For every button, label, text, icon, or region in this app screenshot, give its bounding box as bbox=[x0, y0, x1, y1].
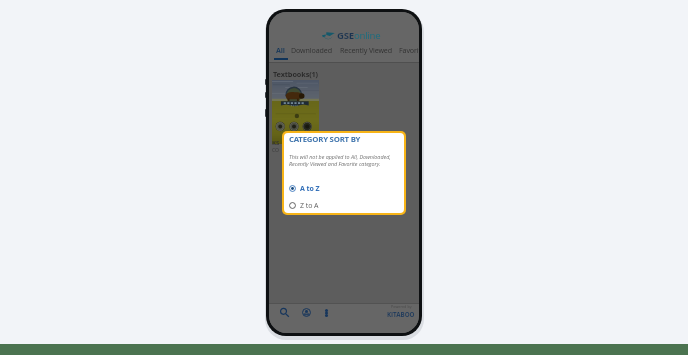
staticText: Favorite bbox=[399, 45, 419, 55]
staticText: Powered by bbox=[391, 304, 412, 309]
button[interactable]: Search bbox=[280, 307, 289, 318]
staticText: Downloaded bbox=[291, 45, 332, 55]
staticText: KITABOO bbox=[387, 310, 415, 318]
staticText: Z to A bbox=[300, 201, 319, 210]
button[interactable]: Downloads bbox=[301, 307, 311, 318]
button[interactable]: More options bbox=[323, 307, 330, 318]
staticText: online bbox=[354, 29, 381, 42]
staticText: All bbox=[276, 45, 285, 55]
staticText: Textbooks(1) bbox=[273, 69, 318, 79]
staticText: CATEGORY SORT BY bbox=[289, 134, 361, 145]
staticText: CO bbox=[272, 147, 279, 154]
staticText: Recently Viewed bbox=[340, 45, 392, 55]
button[interactable]: Favorite bbox=[396, 43, 419, 62]
staticText: KS bbox=[272, 139, 280, 147]
button[interactable]: All bbox=[273, 43, 289, 62]
staticText: A to Z bbox=[300, 184, 320, 193]
button[interactable] bbox=[272, 80, 319, 144]
button[interactable]: Powered by Kitaboo bbox=[387, 304, 415, 318]
button[interactable]: Recently Viewed bbox=[337, 43, 394, 62]
button[interactable]: Downloaded bbox=[288, 43, 334, 62]
staticText: This will not be applied to All, Downloa… bbox=[289, 153, 403, 167]
button[interactable]: A to Z bbox=[289, 184, 397, 193]
staticText: GSE bbox=[337, 29, 354, 42]
button[interactable]: Z to A bbox=[289, 201, 397, 210]
